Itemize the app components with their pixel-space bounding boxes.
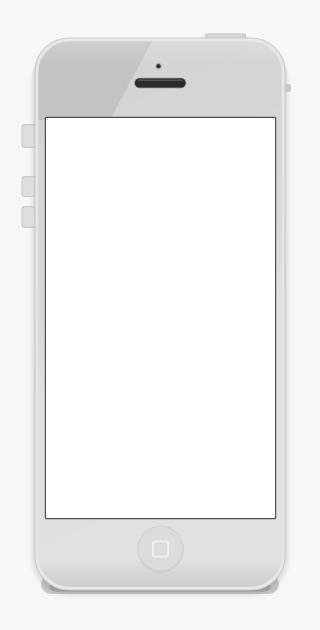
button[interactable]: White iPhone device mockup with blank sc… [0,0,320,630]
